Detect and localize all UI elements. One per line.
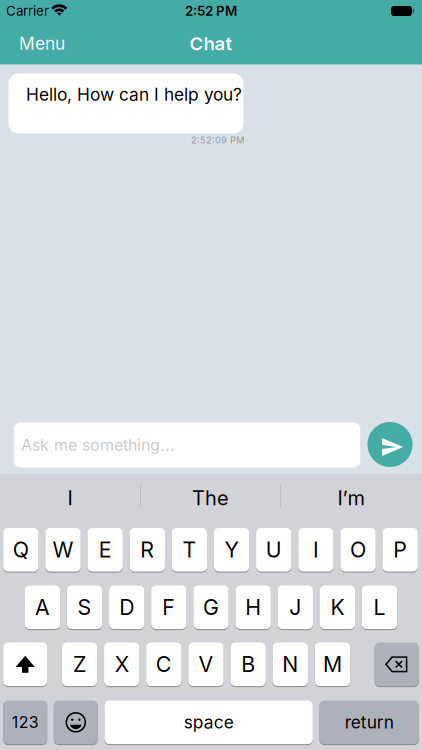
staticText: J (289, 595, 301, 620)
staticText: Z (73, 652, 86, 677)
button[interactable]: B (230, 642, 266, 687)
button[interactable]: Menu (4, 24, 80, 62)
button[interactable]: V (188, 642, 224, 687)
button[interactable]: Message input (13, 421, 361, 468)
button[interactable]: E (87, 527, 123, 572)
staticText: 2:52:09 PM (191, 134, 244, 145)
staticText: K (330, 595, 344, 620)
button[interactable]: Y (214, 527, 249, 572)
staticText: Hello, How can I help you? (26, 84, 242, 105)
button[interactable]: T (172, 527, 207, 572)
button[interactable]: K (320, 585, 355, 630)
staticText: B (241, 652, 255, 677)
button[interactable]: Shift (3, 642, 47, 687)
staticText: Carrier (6, 3, 49, 19)
button[interactable]: R (130, 527, 165, 572)
staticText: W (52, 537, 73, 562)
button[interactable]: U (256, 527, 291, 572)
button[interactable]: Z (62, 642, 97, 687)
button[interactable]: Emoji (54, 700, 98, 745)
button[interactable]: space (104, 700, 313, 745)
staticText: R (140, 537, 154, 562)
staticText: Ask me something... (21, 436, 175, 454)
button[interactable]: X (104, 642, 139, 687)
button[interactable]: L (362, 585, 397, 630)
button[interactable]: return (319, 700, 419, 745)
staticText: Menu (19, 33, 65, 54)
staticText: E (99, 537, 112, 562)
staticText: A (35, 595, 50, 620)
button[interactable]: The (148, 479, 273, 517)
staticText: P (393, 537, 407, 562)
staticText: O (350, 537, 366, 562)
button[interactable]: Send (367, 422, 412, 467)
staticText: Chat (189, 32, 232, 54)
button[interactable]: N (273, 642, 308, 687)
staticText: G (203, 595, 219, 620)
button[interactable]: Q (3, 527, 38, 572)
button[interactable]: A (25, 585, 60, 630)
staticText: space (184, 712, 234, 732)
staticText: H (245, 595, 261, 620)
staticText: I (67, 486, 72, 510)
button[interactable]: C (146, 642, 181, 687)
staticText: 2:52 PM (185, 3, 237, 19)
button[interactable]: 123 (3, 700, 47, 745)
button[interactable]: S (67, 585, 102, 630)
staticText: 123 (12, 713, 39, 732)
button[interactable]: J (278, 585, 313, 630)
staticText: F (162, 595, 175, 620)
button[interactable]: I (298, 527, 333, 572)
staticText: Y (225, 537, 239, 562)
staticText: S (78, 595, 92, 620)
button[interactable]: H (235, 585, 271, 630)
staticText: U (266, 537, 282, 562)
staticText: I’m (337, 486, 364, 510)
staticText: N (282, 652, 298, 677)
staticText: X (115, 652, 129, 677)
button[interactable]: M (315, 642, 350, 687)
staticText: M (323, 652, 342, 677)
staticText: D (119, 595, 134, 620)
staticText: L (374, 595, 386, 620)
button[interactable]: W (45, 527, 81, 572)
button[interactable]: I (7, 479, 132, 517)
button[interactable]: P (382, 527, 418, 572)
button[interactable]: I’m (288, 479, 413, 517)
button[interactable]: F (151, 585, 186, 630)
staticText: T (182, 537, 196, 562)
staticText: The (192, 486, 229, 510)
staticText: Q (13, 537, 29, 562)
staticText: C (156, 652, 172, 677)
staticText: return (345, 712, 394, 732)
button[interactable]: O (340, 527, 376, 572)
button[interactable]: Delete (375, 642, 419, 687)
button[interactable]: D (109, 585, 144, 630)
button[interactable]: G (193, 585, 229, 630)
staticText: V (198, 652, 213, 677)
staticText: I (313, 537, 319, 562)
